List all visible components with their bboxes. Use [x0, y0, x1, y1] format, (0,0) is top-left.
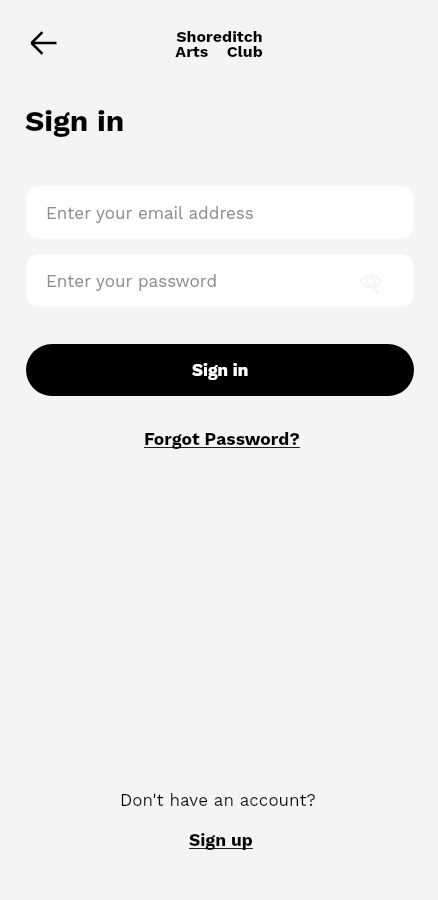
button[interactable]: Enter your email address: [26, 186, 414, 239]
button[interactable]: Forgot Password?: [144, 429, 300, 450]
button[interactable]: Back: [26, 25, 62, 61]
staticText: Enter your password: [46, 271, 218, 291]
staticText: Sign in: [192, 360, 249, 380]
staticText: Enter your email address: [46, 203, 254, 223]
button[interactable]: Sign up: [189, 830, 253, 851]
staticText: Sign in: [25, 103, 125, 138]
staticText: Shoreditch: [176, 27, 263, 46]
staticText: Arts Club: [175, 42, 263, 61]
staticText: Don't have an account?: [120, 790, 316, 810]
button[interactable]: Sign in: [26, 344, 414, 396]
button[interactable]: Show password: [358, 269, 384, 295]
button[interactable]: Enter your password: [26, 254, 414, 307]
